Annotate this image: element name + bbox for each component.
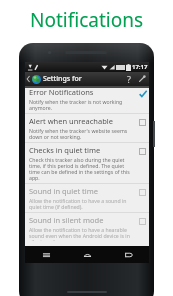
button[interactable]: App icon: [31, 74, 41, 84]
staticText: Alert when unreachable: [29, 116, 113, 126]
button[interactable]: Sound in quiet time: [25, 184, 149, 212]
staticText: Notify when the tracker is not working a…: [29, 98, 135, 111]
staticText: Notify when the tracker's website seems …: [29, 127, 135, 140]
staticText: Allow the notification to have a sound i…: [29, 197, 135, 210]
staticText: Check this tracker also during the quiet…: [29, 156, 135, 181]
button[interactable]: Back: [108, 246, 149, 263]
staticText: Checks in quiet time: [29, 145, 101, 155]
staticText: Sound in quiet time: [29, 186, 98, 196]
staticText: Notifications: [30, 7, 144, 33]
staticText: ?: [127, 73, 131, 85]
button[interactable]: Settings: [135, 72, 149, 86]
button[interactable]: Alert when unreachable: [25, 114, 149, 142]
staticText: 17:17: [132, 63, 148, 71]
button[interactable]: Error Notifications: [25, 85, 149, 113]
button[interactable]: Navigate up: [25, 72, 31, 86]
staticText: Settings for reuters.com: [43, 74, 123, 84]
button[interactable]: Recents: [25, 246, 67, 263]
staticText: Allow the notification to have a hearabl…: [29, 226, 135, 241]
button[interactable]: Sound in silent mode: [25, 213, 149, 243]
staticText: Sound in silent mode: [29, 215, 104, 225]
staticText: Error Notifications: [29, 87, 94, 97]
button[interactable]: Checks in quiet time: [25, 143, 149, 183]
button[interactable]: Home: [67, 246, 108, 263]
button[interactable]: Help: [123, 72, 135, 86]
